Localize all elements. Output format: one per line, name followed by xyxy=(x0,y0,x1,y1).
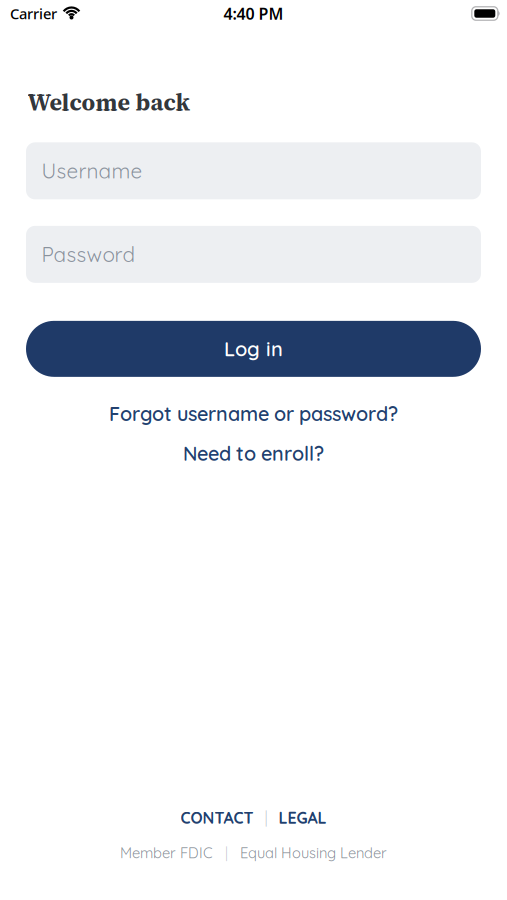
button[interactable]: Password xyxy=(26,226,481,283)
button[interactable]: Need to enroll? xyxy=(183,441,324,466)
staticText: Password xyxy=(41,241,135,267)
staticText: CONTACT xyxy=(180,808,253,828)
button[interactable]: Log in xyxy=(26,321,481,377)
staticText: Carrier xyxy=(10,4,57,23)
staticText: Member FDIC xyxy=(120,844,213,862)
staticText: Need to enroll? xyxy=(183,441,324,466)
staticText: Log in xyxy=(224,336,283,361)
staticText: LEGAL xyxy=(278,808,326,828)
button[interactable]: Username xyxy=(26,142,481,199)
staticText: Username xyxy=(41,158,142,184)
staticText: 4:40 PM xyxy=(223,3,283,24)
staticText: Welcome back xyxy=(27,86,189,118)
button[interactable]: CONTACT xyxy=(180,808,253,828)
button[interactable]: Forgot username or password? xyxy=(109,401,398,426)
staticText: | xyxy=(264,808,267,828)
button[interactable]: LEGAL xyxy=(278,808,326,828)
staticText: Equal Housing Lender xyxy=(240,844,387,862)
staticText: | xyxy=(225,844,228,862)
staticText: Forgot username or password? xyxy=(109,401,398,426)
